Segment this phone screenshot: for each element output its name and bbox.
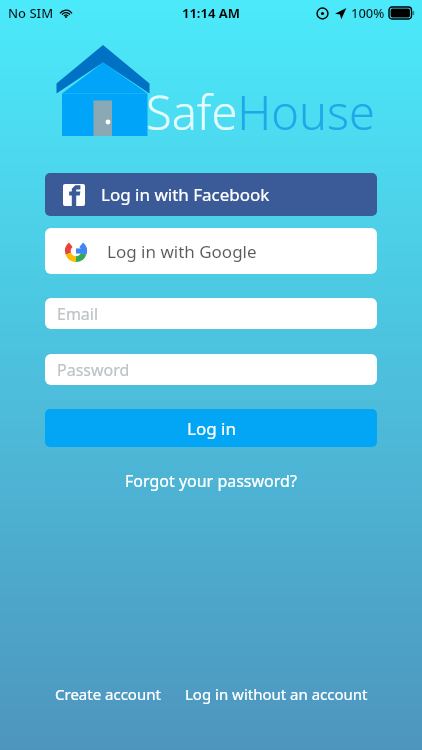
staticText: Log in	[187, 417, 236, 440]
button[interactable]: Forgot your password?	[119, 464, 303, 498]
staticText: Log in with Facebook	[101, 183, 270, 206]
staticText: SafeHouse	[146, 80, 375, 144]
button[interactable]: Log in without an account	[181, 680, 372, 708]
staticText: Log in with Google	[107, 240, 257, 263]
staticText: Forgot your password?	[125, 470, 297, 492]
staticText: Create account	[55, 684, 161, 704]
button[interactable]: Email	[45, 298, 377, 329]
button[interactable]: Create account	[51, 680, 165, 708]
button[interactable]: Log in	[45, 409, 377, 447]
button[interactable]: Password	[45, 354, 377, 385]
button[interactable]: Log in with Google	[45, 228, 377, 274]
staticText: 11:14 AM	[182, 4, 241, 22]
staticText: Log in without an account	[185, 684, 368, 704]
staticText: 100%	[351, 4, 385, 22]
button[interactable]: Log in with Facebook	[45, 173, 377, 216]
staticText: Email	[57, 303, 99, 325]
staticText: No SIM	[8, 4, 54, 22]
staticText: Password	[57, 359, 130, 381]
